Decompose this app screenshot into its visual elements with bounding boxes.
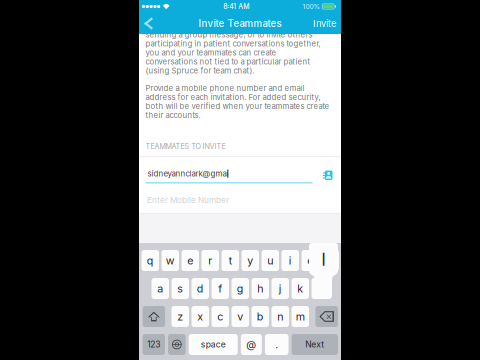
staticText: 100% — [303, 2, 321, 11]
staticText: participating in patient conversations t… — [145, 39, 320, 48]
staticText: l — [321, 249, 325, 270]
button[interactable]: p — [321, 250, 339, 271]
button[interactable]: k — [291, 278, 309, 299]
button[interactable]: a — [151, 278, 169, 299]
staticText: c — [217, 310, 223, 323]
staticText: Invite Teammates — [198, 18, 281, 29]
staticText: j — [279, 282, 282, 295]
staticText: u — [267, 254, 273, 267]
button[interactable]: y — [241, 250, 259, 271]
staticText: z — [177, 310, 183, 323]
button[interactable]: h — [251, 278, 269, 299]
staticText: n — [277, 310, 283, 323]
button[interactable]: w — [161, 250, 179, 271]
button[interactable]: Switch keyboard — [168, 334, 186, 355]
staticText: e — [187, 254, 193, 267]
button[interactable]: Shift — [143, 306, 165, 327]
button[interactable]: g — [231, 278, 249, 299]
button[interactable]: m — [291, 306, 309, 327]
button[interactable]: Next — [292, 334, 338, 355]
button[interactable]: c — [211, 306, 229, 327]
button[interactable]: x — [191, 306, 209, 327]
staticText: t — [229, 254, 232, 267]
staticText: Next — [305, 339, 324, 350]
staticText: both will be verified when your teammate… — [145, 102, 329, 111]
staticText: v — [237, 310, 243, 323]
staticText: TEAMMATES TO INVITE — [145, 142, 225, 151]
button[interactable]: space — [189, 334, 238, 355]
button[interactable]: d — [191, 278, 209, 299]
staticText: f — [218, 282, 222, 295]
button[interactable]: b — [251, 306, 269, 327]
button[interactable]: u — [261, 250, 279, 271]
staticText: 123 — [147, 339, 160, 350]
button[interactable]: q — [141, 250, 159, 271]
staticText: Invite — [313, 18, 336, 29]
button[interactable]: s — [171, 278, 189, 299]
staticText: Provide a mobile phone number and email — [145, 83, 304, 93]
staticText: w — [166, 254, 175, 267]
button[interactable]: 123 — [143, 334, 165, 355]
staticText: r — [208, 254, 212, 267]
staticText: you and your teammates can create — [145, 48, 276, 57]
staticText: k — [297, 282, 303, 295]
button[interactable]: Invite — [307, 15, 341, 32]
button[interactable]: Choose from contacts — [319, 167, 334, 183]
staticText: sending a group message, or to invite ot… — [145, 30, 312, 39]
button[interactable]: v — [231, 306, 249, 327]
staticText: s — [177, 282, 183, 295]
button[interactable]: z — [171, 306, 189, 327]
staticText: their accounts. — [145, 111, 200, 120]
staticText: address for each invitation. For added s… — [145, 92, 320, 102]
staticText: i — [289, 254, 292, 267]
staticText: h — [257, 282, 263, 295]
staticText: m — [296, 310, 305, 323]
staticText: Enter Mobile Number — [147, 195, 229, 205]
staticText: sidneyannclark@gmai — [147, 169, 228, 178]
button[interactable]: . — [265, 334, 289, 355]
staticText: 8:41 AM — [223, 2, 249, 11]
staticText: (using Spruce for team chat). — [145, 66, 254, 75]
staticText: q — [147, 254, 154, 267]
button[interactable]: i — [281, 250, 299, 271]
button[interactable]: r — [201, 250, 219, 271]
staticText: x — [197, 310, 203, 323]
button[interactable]: e — [181, 250, 199, 271]
button[interactable]: Delete — [315, 306, 338, 327]
staticText: b — [257, 310, 264, 323]
button[interactable]: o — [301, 250, 319, 271]
staticText: conversations not tied to a particular p… — [145, 57, 310, 66]
staticText: o — [307, 254, 313, 267]
button[interactable]: Back — [139, 14, 162, 33]
staticText: d — [197, 282, 204, 295]
button[interactable]: f — [211, 278, 229, 299]
staticText: . — [275, 338, 278, 351]
staticText: @ — [246, 338, 256, 351]
button[interactable]: n — [271, 306, 289, 327]
staticText: a — [157, 282, 163, 295]
button[interactable]: j — [271, 278, 289, 299]
staticText: space — [201, 339, 226, 350]
staticText: y — [247, 254, 253, 267]
button[interactable]: t — [221, 250, 239, 271]
button[interactable]: @ — [241, 334, 262, 355]
staticText: g — [237, 282, 244, 295]
